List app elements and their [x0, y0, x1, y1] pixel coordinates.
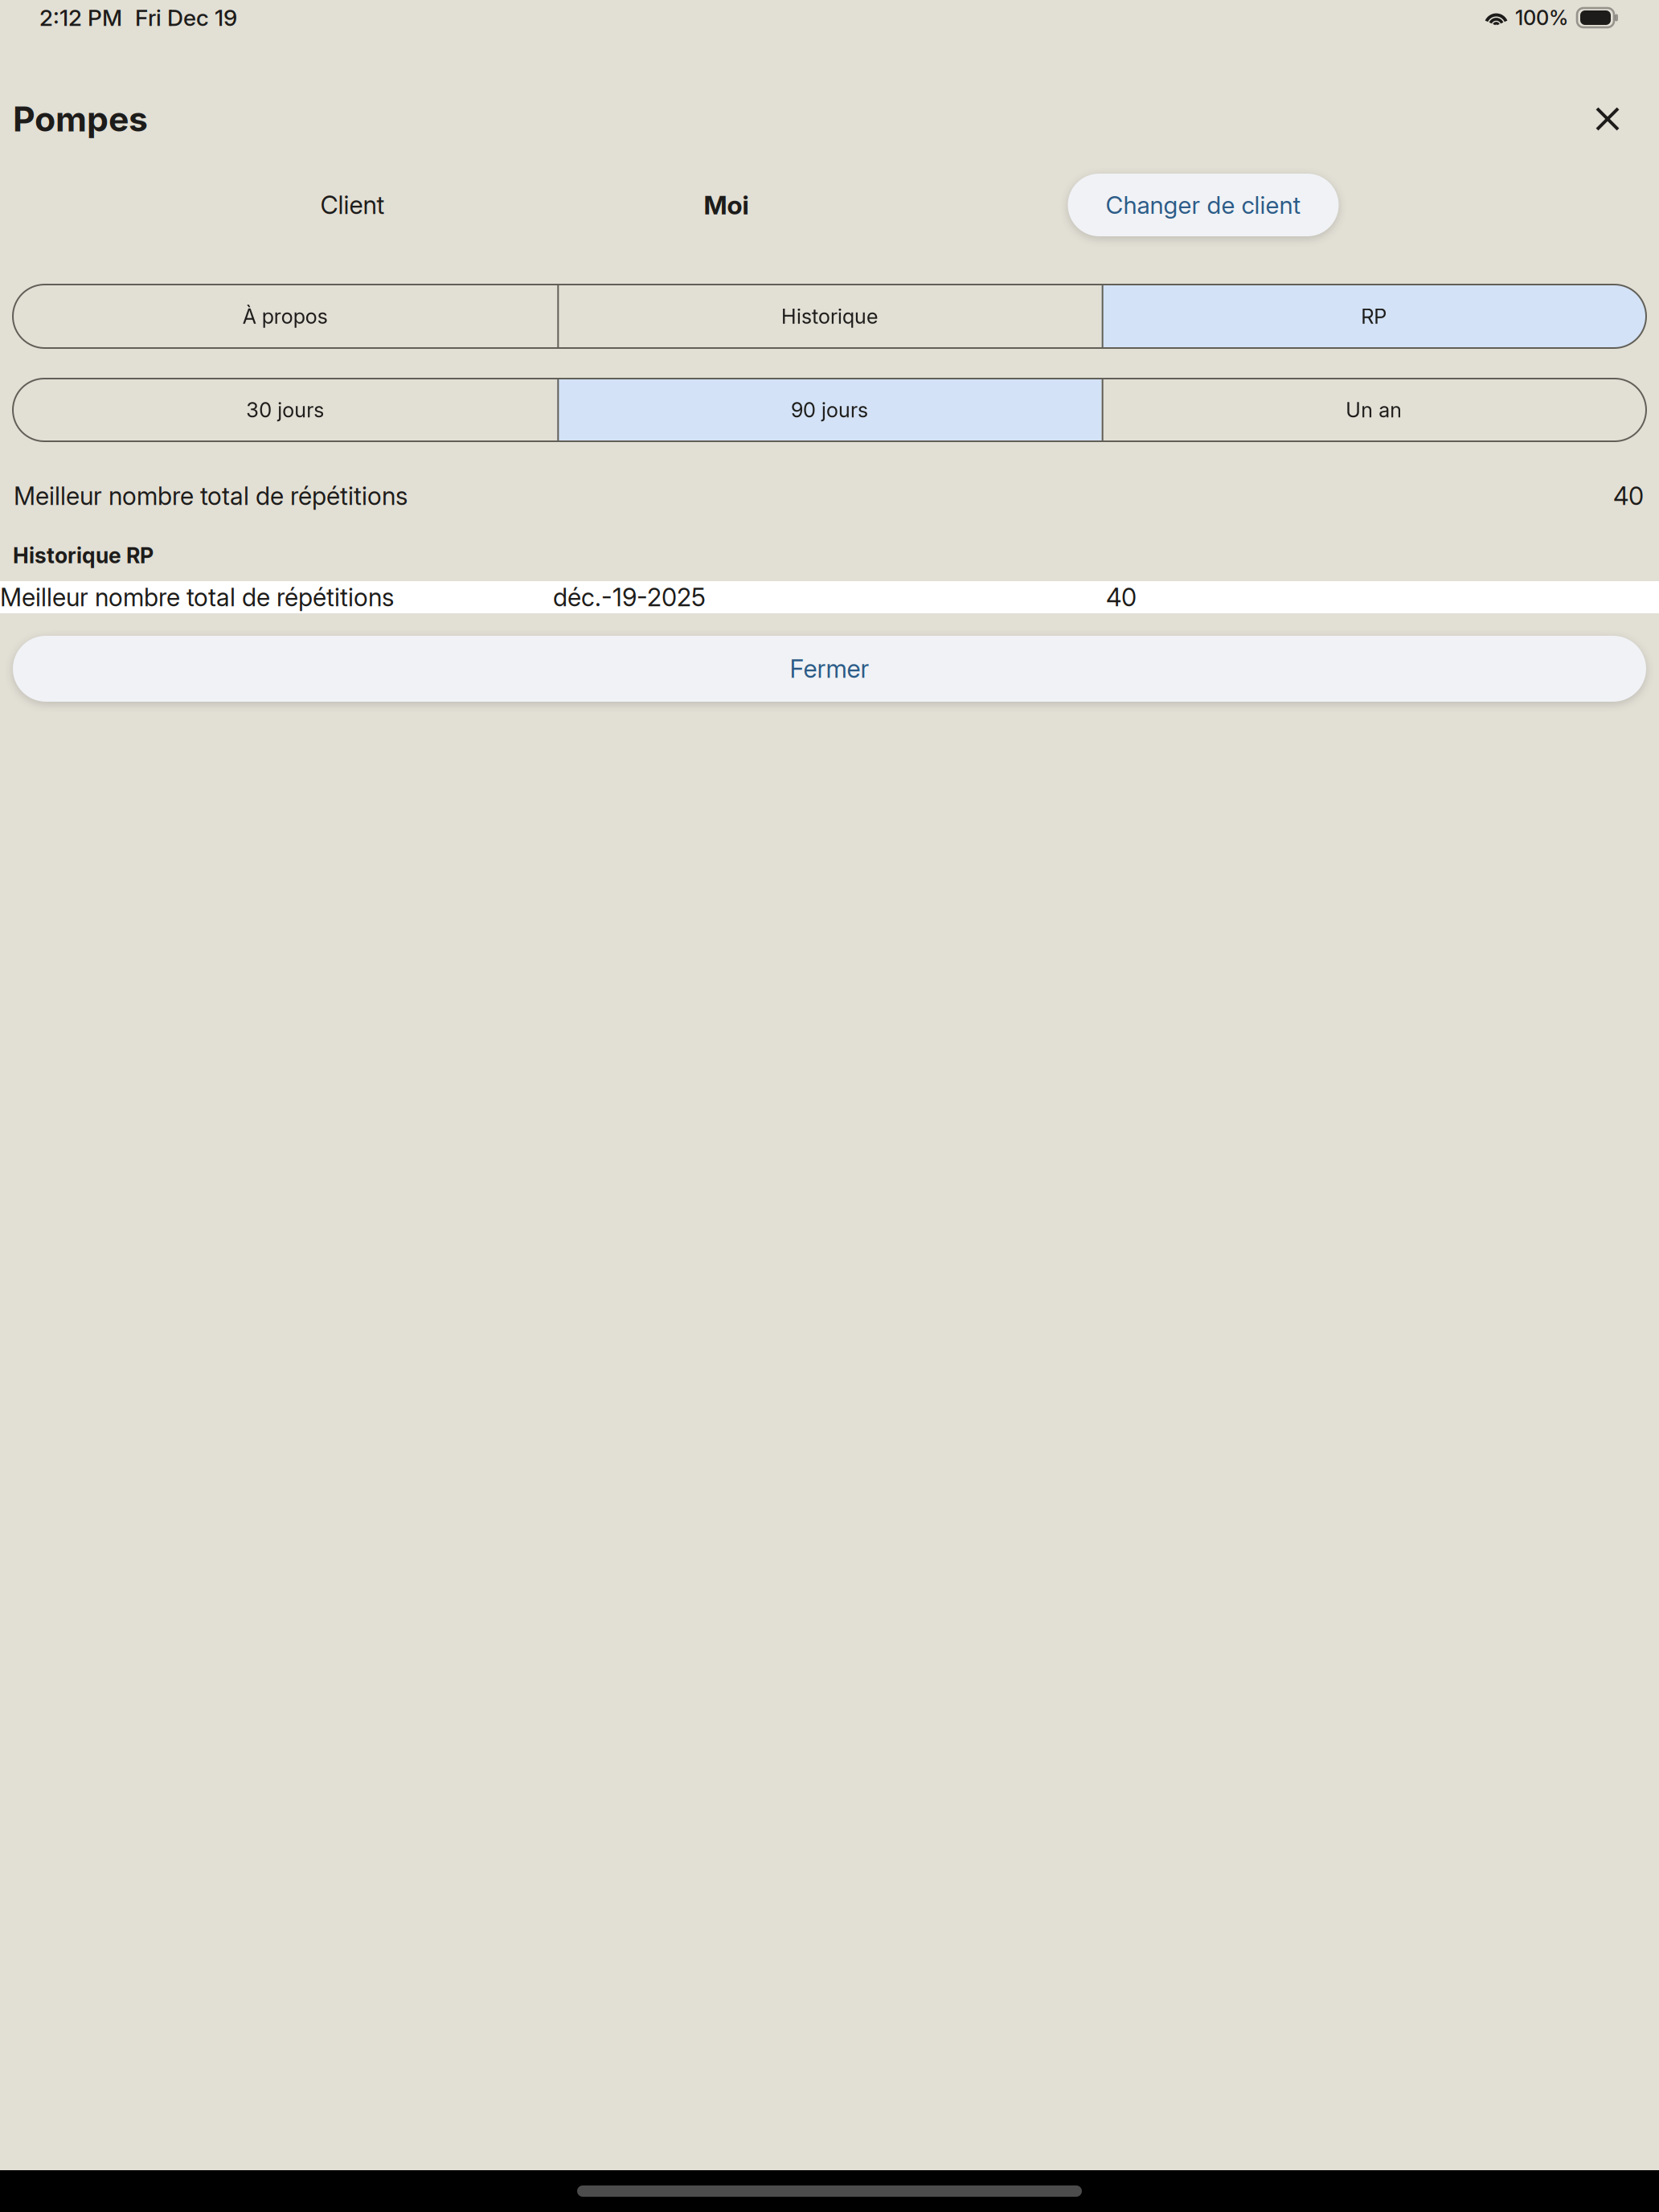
staticText: Meilleur nombre total de répétitions [0, 582, 394, 612]
button[interactable]: Fermer [1575, 87, 1640, 151]
staticText: RP [1361, 304, 1387, 329]
staticText: Un an [1346, 398, 1402, 422]
staticText: Fri Dec 19 [135, 4, 237, 31]
staticText: 90 jours [791, 398, 868, 422]
button[interactable]: Changer de client [1068, 174, 1339, 236]
staticText: 100% [1515, 5, 1568, 30]
staticText: 2:12 PM [39, 4, 122, 31]
staticText: Client [320, 190, 385, 220]
button[interactable]: RP [1102, 285, 1646, 348]
button[interactable]: Fermer [13, 636, 1646, 702]
staticText: Historique RP [13, 542, 154, 568]
button[interactable]: 30 jours [13, 379, 557, 441]
button[interactable]: Un an [1102, 379, 1646, 441]
button[interactable]: À propos [13, 285, 557, 348]
staticText: 30 jours [246, 398, 324, 422]
staticText: Historique [781, 304, 878, 329]
staticText: 40 [1106, 582, 1137, 612]
staticText: déc.-19-2025 [553, 582, 706, 612]
staticText: Meilleur nombre total de répétitions [14, 481, 408, 511]
button[interactable]: Historique [557, 285, 1102, 348]
staticText: Moi [704, 189, 749, 220]
staticText: 40 [1613, 481, 1644, 511]
staticText: À propos [243, 304, 328, 329]
staticText: Changer de client [1106, 190, 1301, 220]
staticText: Pompes [13, 98, 148, 140]
button[interactable]: 90 jours [557, 379, 1102, 441]
staticText: Fermer [790, 654, 869, 684]
